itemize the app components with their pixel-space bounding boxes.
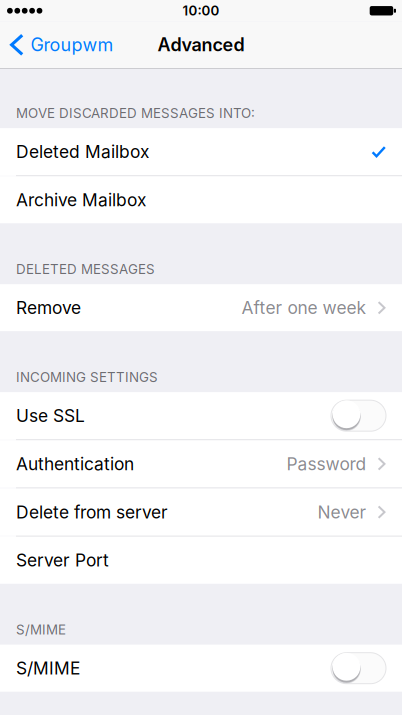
button[interactable]: Groupwm bbox=[0, 21, 124, 68]
button[interactable]: Authentication bbox=[0, 440, 402, 487]
staticText: Never bbox=[317, 502, 366, 523]
staticText: Use SSL bbox=[16, 405, 85, 426]
staticText: S/MIME bbox=[16, 621, 66, 638]
staticText: Groupwm bbox=[31, 34, 114, 56]
staticText: INCOMING SETTINGS bbox=[16, 369, 158, 385]
staticText: Delete from server bbox=[16, 502, 168, 523]
staticText: Deleted Mailbox bbox=[16, 141, 149, 162]
staticText: Archive Mailbox bbox=[16, 189, 146, 210]
staticText: Server Port bbox=[16, 550, 109, 571]
button[interactable]: S/MIME bbox=[0, 645, 402, 692]
staticText: 10:00 bbox=[182, 3, 219, 19]
button[interactable]: Server Port bbox=[0, 537, 402, 584]
button[interactable]: Deleted Mailbox bbox=[0, 128, 402, 175]
staticText: After one week bbox=[241, 297, 366, 318]
button[interactable]: Delete from server bbox=[0, 488, 402, 536]
button[interactable]: Remove bbox=[0, 284, 402, 331]
staticText: MOVE DISCARDED MESSAGES INTO: bbox=[16, 105, 255, 121]
staticText: Remove bbox=[16, 297, 81, 318]
button[interactable]: Use SSL bbox=[0, 392, 402, 439]
staticText: S/MIME bbox=[16, 658, 80, 679]
staticText: Advanced bbox=[157, 34, 244, 56]
button[interactable]: Archive Mailbox bbox=[0, 176, 402, 223]
staticText: Password bbox=[286, 453, 366, 474]
staticText: DELETED MESSAGES bbox=[16, 261, 155, 277]
staticText: Authentication bbox=[16, 453, 134, 474]
